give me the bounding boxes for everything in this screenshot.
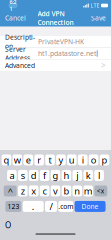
button[interactable]: m — [83, 185, 93, 196]
staticText: Advanced — [5, 61, 35, 70]
button[interactable]: Done — [75, 201, 106, 212]
staticText: s — [21, 169, 25, 182]
staticText: m — [84, 185, 93, 197]
staticText: n — [74, 185, 80, 197]
button[interactable]: w — [13, 154, 22, 165]
button[interactable]: k — [83, 170, 93, 181]
button[interactable]: v — [51, 185, 60, 196]
button[interactable]: d — [29, 170, 38, 181]
button[interactable]: Server Address — [0, 48, 111, 59]
staticText: x — [31, 185, 36, 197]
staticText: Description — [5, 33, 35, 50]
button[interactable]: u — [67, 154, 77, 165]
button[interactable]: .com — [58, 201, 73, 212]
staticText: y — [58, 154, 63, 166]
button[interactable]: o — [89, 154, 98, 165]
staticText: Done — [82, 202, 99, 211]
staticText: t — [49, 154, 52, 166]
button[interactable]: n — [72, 185, 82, 196]
staticText: PrivateVPN-HK — [38, 37, 84, 46]
staticText: g — [52, 169, 58, 182]
staticText: b — [63, 185, 69, 197]
staticText: l — [98, 169, 100, 182]
button[interactable]: p — [100, 154, 109, 165]
button[interactable]: j — [72, 170, 82, 181]
staticText: q — [3, 154, 9, 166]
button[interactable]: h — [62, 170, 71, 181]
button[interactable]: / — [45, 201, 57, 212]
button[interactable]: <x — [94, 185, 107, 196]
button[interactable]: ^ — [4, 185, 17, 196]
button[interactable]: g — [51, 170, 60, 181]
staticText: LTE — [90, 2, 99, 9]
staticText: e — [26, 154, 31, 166]
staticText: Save — [91, 14, 106, 22]
button[interactable]: c — [40, 185, 49, 196]
button[interactable]: y — [56, 154, 66, 165]
button[interactable]: Description — [0, 36, 111, 47]
staticText: .com — [58, 202, 73, 211]
staticText: u — [69, 154, 75, 166]
button[interactable]: x — [29, 185, 38, 196]
button[interactable]: Cancel — [0, 11, 24, 25]
staticText: k — [86, 169, 91, 182]
staticText: <x — [97, 186, 105, 195]
staticText: . — [32, 200, 35, 213]
button[interactable]: b — [62, 185, 71, 196]
staticText: i — [82, 154, 84, 166]
staticText: o — [91, 154, 97, 166]
staticText: h — [63, 169, 69, 182]
button[interactable]: Advanced — [0, 60, 111, 71]
staticText: 123 — [7, 202, 19, 211]
staticText: a — [9, 169, 14, 182]
staticText: j — [76, 169, 78, 182]
button[interactable]: 123 — [5, 201, 21, 212]
button[interactable]: s — [18, 170, 28, 181]
staticText: r — [37, 154, 41, 166]
staticText: p — [102, 154, 108, 166]
staticText: z — [21, 185, 25, 197]
staticText: c — [43, 185, 47, 197]
button[interactable]: q — [2, 154, 11, 165]
staticText: / — [49, 200, 52, 213]
button[interactable]: e — [23, 154, 33, 165]
button[interactable]: t — [45, 154, 55, 165]
button[interactable]: i — [78, 154, 88, 165]
button[interactable]: . — [23, 201, 44, 212]
button[interactable]: Save — [87, 11, 111, 25]
staticText: Cancel — [5, 14, 26, 22]
staticText: Add VPN Connection — [37, 9, 73, 27]
staticText: f — [43, 169, 46, 182]
staticText: d — [31, 169, 37, 182]
staticText: v — [53, 185, 58, 197]
staticText: Server Address — [5, 45, 30, 62]
staticText: O — [5, 220, 11, 230]
staticText: > — [101, 60, 106, 71]
staticText: ht1.pdatastore.net — [38, 49, 96, 58]
button[interactable]: z — [18, 185, 28, 196]
button[interactable]: a — [7, 170, 17, 181]
button[interactable]: r — [34, 154, 44, 165]
staticText: 6:21 — [10, 0, 17, 13]
button[interactable]: l — [94, 170, 104, 181]
staticText: w — [14, 154, 21, 166]
button[interactable]: f — [40, 170, 49, 181]
staticText: ^ — [8, 185, 13, 197]
